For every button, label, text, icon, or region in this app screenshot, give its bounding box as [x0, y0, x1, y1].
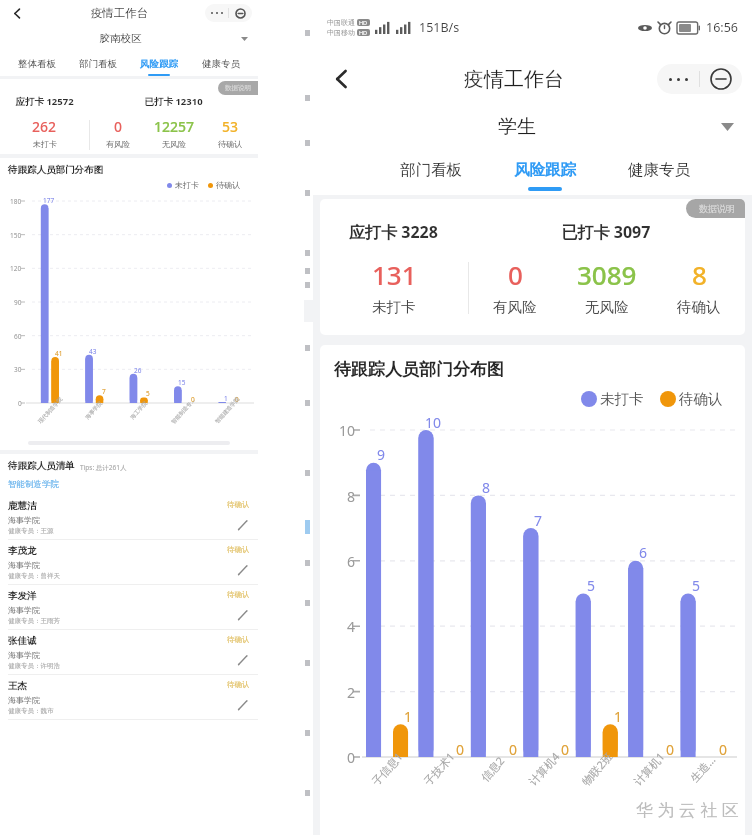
staticText: 中国联通 [327, 18, 355, 27]
button[interactable]: More options [657, 64, 699, 94]
staticText: 健康专员：王源 [8, 527, 54, 535]
button[interactable]: 智能制造学院 [8, 479, 59, 490]
staticText: 健康专员：曾祥天 [8, 572, 60, 580]
button[interactable]: Edit [236, 698, 250, 712]
staticText: 0 [509, 740, 518, 759]
staticText: 7 [534, 511, 543, 530]
staticText: 6 [347, 552, 356, 571]
staticText: 海事学院 [8, 515, 40, 525]
button[interactable]: 李茂龙 [0, 540, 258, 585]
staticText: 无风险 [585, 298, 629, 316]
button[interactable]: 风险跟踪 [128, 51, 190, 76]
staticText: 8 [482, 478, 491, 497]
button[interactable]: Close [229, 4, 252, 22]
button[interactable]: 整体看板 [6, 51, 67, 76]
staticText: 未打卡 [175, 180, 199, 190]
staticText: 8 [347, 487, 356, 506]
staticText: 151B/s [419, 19, 460, 36]
staticText: 有风险 [106, 139, 130, 149]
button[interactable]: Edit [236, 518, 250, 532]
staticText: 待跟踪人员清单 [8, 460, 75, 472]
button[interactable]: Edit [236, 608, 250, 622]
staticText: 李茂龙 [8, 545, 37, 557]
staticText: 子技术1 [420, 749, 458, 788]
button[interactable]: More [205, 4, 228, 22]
staticText: 应打卡 12572 [0, 95, 89, 108]
staticText: 待确认 [679, 390, 723, 408]
staticText: 待跟踪人员部门分布图 [334, 359, 504, 380]
button[interactable]: Back [0, 0, 34, 26]
staticText: 26 [134, 366, 142, 375]
button[interactable]: Back [313, 55, 371, 103]
staticText: 应打卡 3228 [320, 221, 467, 243]
staticText: 王杰 [8, 680, 27, 692]
staticText: 待确认 [218, 139, 242, 149]
staticText: 生造… [687, 752, 718, 785]
button[interactable]: 李发洋 [0, 585, 258, 630]
button[interactable]: 部门看板 [373, 151, 488, 195]
staticText: 鹿慧洁 [8, 500, 37, 512]
staticText: 已打卡 12310 [89, 95, 258, 108]
staticText: 健康专员：王雨芳 [8, 617, 60, 625]
staticText: 健康专员：魏市 [8, 707, 54, 715]
staticText: 0 [666, 740, 675, 759]
button[interactable]: 学生 [313, 103, 752, 151]
staticText: 物联2班 [578, 749, 616, 788]
button[interactable]: 数据说明 [699, 203, 735, 214]
staticText: 数据说明 [225, 84, 251, 92]
staticText: 0 [191, 395, 195, 404]
staticText: 2 [347, 683, 356, 702]
staticText: 15 [178, 378, 186, 387]
staticText: 6 [639, 543, 648, 562]
staticText: 1 [614, 707, 623, 726]
button[interactable]: 风险跟踪 [488, 151, 602, 195]
staticText: Tips: 总计261人 [80, 463, 127, 472]
button[interactable]: Edit [236, 653, 250, 667]
staticText: 现代制造学院 [37, 396, 64, 425]
staticText: 131 [372, 257, 417, 292]
staticText: 海事学院 [8, 650, 40, 660]
button[interactable]: 数据说明 [225, 84, 251, 92]
staticText: 0 [719, 740, 728, 759]
staticText: 智能制造专… [169, 396, 197, 425]
button[interactable]: 张佳诚 [0, 630, 258, 675]
staticText: 疫情工作台 [34, 6, 205, 20]
staticText: HD [359, 19, 368, 26]
button[interactable]: 部门看板 [67, 51, 128, 76]
button[interactable]: 健康专员 [190, 51, 252, 76]
staticText: 0 [561, 740, 570, 759]
staticText: 120 [10, 264, 22, 273]
staticText: 90 [14, 298, 22, 307]
staticText: 信息2 [477, 753, 508, 784]
staticText: 5 [587, 576, 596, 595]
staticText: 30 [14, 365, 22, 374]
button[interactable]: Edit [236, 563, 250, 577]
staticText: 待确认 [677, 298, 721, 316]
staticText: 0 [347, 748, 356, 767]
staticText: 0 [114, 117, 123, 136]
button[interactable]: Close [700, 64, 742, 94]
staticText: 53 [222, 117, 239, 136]
staticText: 9 [377, 445, 386, 464]
staticText: 0 [18, 399, 22, 408]
staticText: 待确认 [227, 680, 250, 689]
staticText: 子信息1 [368, 749, 406, 788]
staticText: 部门看板 [400, 160, 462, 180]
staticText: 风险跟踪 [140, 58, 178, 70]
button[interactable]: 健康专员 [602, 151, 716, 195]
staticText: 1 [224, 394, 228, 403]
staticText: HD [359, 29, 368, 36]
staticText: 未打卡 [600, 390, 644, 408]
staticText: 16:56 [706, 19, 738, 36]
button[interactable]: 鹿慧洁 [0, 495, 258, 540]
staticText: 43 [89, 347, 97, 356]
button[interactable]: 胶南校区 [0, 26, 258, 51]
staticText: 胶南校区 [0, 32, 241, 45]
staticText: 张佳诚 [8, 635, 37, 647]
staticText: 12257 [154, 117, 195, 136]
button[interactable]: 王杰 [0, 675, 258, 720]
staticText: 健康专员 [628, 160, 690, 180]
staticText: 未打卡 [372, 298, 416, 316]
staticText: 海事学院 [8, 605, 40, 615]
staticText: 3089 [577, 257, 637, 292]
